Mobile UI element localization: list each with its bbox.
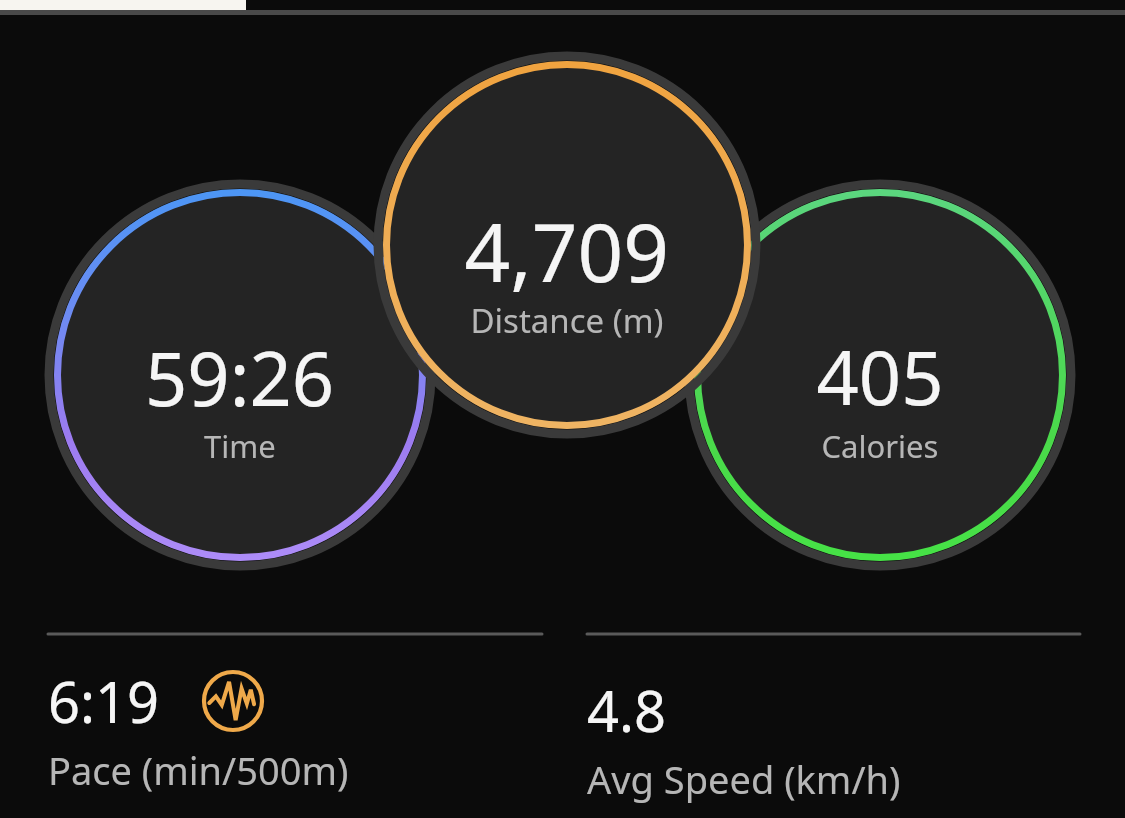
button[interactable]: Pace 6:19 minutes per 500 meters [48,650,542,800]
button[interactable]: Time 59:26 [48,183,433,568]
button[interactable]: Average Speed 4.8 kilometers per hour [587,650,1081,800]
button[interactable]: Distance 4,709 meters [384,61,752,429]
button[interactable]: Calories 405 [688,183,1073,568]
